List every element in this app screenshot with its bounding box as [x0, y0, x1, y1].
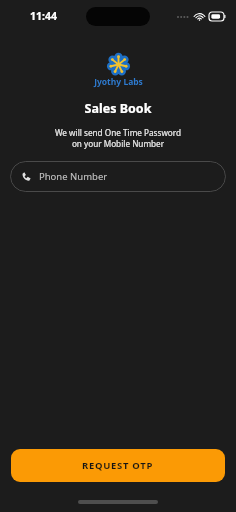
button[interactable]: Phone Number	[10, 161, 226, 192]
staticText: We will send One Time Password on your M…	[0, 127, 236, 149]
staticText: Phone Number	[39, 170, 108, 183]
staticText: 11:44	[30, 9, 57, 23]
button[interactable]: REQUEST OTP	[11, 449, 225, 482]
staticText: Sales Book	[0, 100, 236, 117]
staticText: REQUEST OTP	[82, 459, 154, 472]
staticText: Jyothy Labs	[94, 76, 143, 88]
